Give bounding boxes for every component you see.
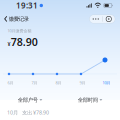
button[interactable]: More bbox=[89, 15, 102, 23]
staticText: 全部户号 bbox=[18, 97, 38, 103]
button[interactable]: 全部户号 bbox=[0, 93, 60, 107]
staticText: 10月 bbox=[7, 109, 18, 116]
staticText: 10月缴费金额 bbox=[7, 28, 31, 33]
staticText: 10月 bbox=[102, 80, 110, 85]
staticText: 7月 bbox=[31, 80, 37, 85]
button[interactable]: Close bbox=[102, 15, 115, 23]
staticText: 6月 bbox=[7, 80, 13, 85]
staticText: 78.90 bbox=[11, 35, 38, 49]
button[interactable]: 缴费记录 bbox=[0, 12, 32, 26]
staticText: 支出 ¥78.90 bbox=[22, 109, 49, 116]
staticText: 缴费记录 bbox=[9, 16, 29, 22]
button[interactable]: 全部时间 bbox=[60, 93, 120, 107]
staticText: ¥ bbox=[7, 40, 10, 47]
staticText: 8月 bbox=[55, 80, 61, 85]
staticText: 全部时间 bbox=[78, 97, 98, 103]
staticText: 9月 bbox=[79, 80, 85, 85]
staticText: 19:31 bbox=[16, 0, 38, 11]
